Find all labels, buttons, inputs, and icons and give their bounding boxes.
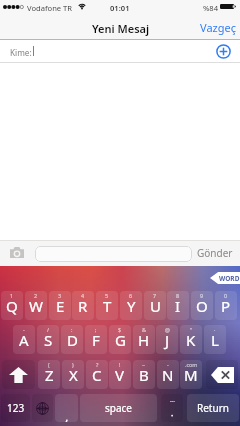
staticText: H <box>138 330 150 350</box>
staticText: J <box>165 330 170 350</box>
staticText: 1 <box>10 292 14 299</box>
button[interactable]: 0 <box>215 291 237 320</box>
staticText: 7 <box>153 292 157 299</box>
button[interactable]: @ <box>156 325 178 354</box>
button[interactable]: ( <box>38 360 60 389</box>
button[interactable]: 1 <box>1 291 23 320</box>
button[interactable]: ? <box>86 360 108 389</box>
button[interactable]: Camera <box>8 245 25 260</box>
staticText: • <box>171 412 174 420</box>
button[interactable]: 9 <box>191 291 213 320</box>
staticText: S <box>44 330 53 350</box>
staticText: W <box>29 296 43 316</box>
button[interactable]: 2 <box>25 291 47 320</box>
staticText: G <box>115 330 126 350</box>
staticText: Vodafone TR <box>27 3 73 13</box>
staticText: B <box>139 365 149 385</box>
button[interactable]: Add contact <box>213 41 234 62</box>
staticText: ••• <box>170 399 175 405</box>
button[interactable]: ••• <box>161 394 183 422</box>
staticText: @ <box>165 326 170 333</box>
staticText: - <box>23 326 25 333</box>
staticText: ? <box>96 361 99 368</box>
button[interactable]: 4 <box>72 291 94 320</box>
staticText: 6 <box>129 292 133 299</box>
button[interactable]: Vazgeç <box>196 17 240 38</box>
button[interactable]: " <box>180 325 202 354</box>
staticText: K <box>186 330 196 350</box>
staticText: A <box>19 330 29 350</box>
staticText: F <box>92 330 100 350</box>
staticText: %84 <box>203 3 218 13</box>
button[interactable]: : <box>61 325 83 354</box>
button[interactable]: 7 <box>144 291 166 320</box>
staticText: Y <box>127 296 136 316</box>
staticText: P <box>221 296 231 316</box>
button[interactable]: 123 <box>1 394 30 422</box>
staticText: M <box>184 365 198 385</box>
staticText: U <box>150 296 161 316</box>
staticText: 4 <box>81 292 85 299</box>
staticText: ) <box>72 361 74 368</box>
staticText: $ <box>118 326 122 333</box>
staticText: O <box>196 296 208 316</box>
button[interactable] <box>35 246 192 262</box>
staticText: space <box>105 401 132 415</box>
staticText: Z <box>45 365 54 385</box>
staticText: / <box>47 326 50 333</box>
button[interactable]: 3 <box>49 291 71 320</box>
button[interactable]: space <box>80 394 157 422</box>
staticText: ( <box>48 361 50 368</box>
staticText: R <box>78 296 88 316</box>
staticText: , <box>65 407 69 422</box>
staticText: 2 <box>34 292 38 299</box>
staticText: Return <box>197 401 229 415</box>
button[interactable]: / <box>37 325 59 354</box>
staticText: & <box>142 326 146 333</box>
button[interactable]: Gönder <box>195 244 235 262</box>
button[interactable]: Return <box>187 394 239 422</box>
staticText: 123 <box>7 401 25 415</box>
button[interactable]: Backspace <box>206 360 238 389</box>
button[interactable]: & <box>133 325 155 354</box>
button[interactable]: - <box>157 360 179 389</box>
staticText: 01:01 <box>110 3 130 13</box>
button[interactable]: 5 <box>96 291 118 320</box>
staticText: · <box>214 326 216 333</box>
staticText: WORD <box>219 274 240 283</box>
staticText: T <box>103 296 112 316</box>
button[interactable]: - <box>13 325 35 354</box>
staticText: 8 <box>176 292 180 299</box>
button[interactable]: ! <box>109 360 131 389</box>
staticText: X <box>69 365 78 385</box>
button[interactable]: 8 <box>167 291 189 320</box>
staticText: ! <box>119 361 121 368</box>
staticText: D <box>67 330 78 350</box>
button[interactable]: · <box>204 325 226 354</box>
button[interactable]: , <box>55 394 78 422</box>
staticText: L <box>211 330 219 350</box>
staticText: 5 <box>105 292 109 299</box>
button[interactable]: ~ <box>133 360 155 389</box>
staticText: ; <box>95 326 97 333</box>
staticText: Gönder <box>197 246 233 260</box>
staticText: N <box>162 365 174 385</box>
button[interactable]: ; <box>85 325 107 354</box>
staticText: ~ <box>142 361 146 368</box>
button[interactable]: .com <box>180 360 202 389</box>
staticText: " <box>190 326 193 333</box>
staticText: .com <box>185 361 198 368</box>
button[interactable]: ) <box>62 360 84 389</box>
staticText: 3 <box>58 292 62 299</box>
staticText: C <box>92 365 102 385</box>
staticText: Vazgeç <box>200 20 236 35</box>
button[interactable]: $ <box>109 325 131 354</box>
button[interactable]: Change keyboard <box>32 394 53 422</box>
staticText: 0 <box>224 292 228 299</box>
staticText: - <box>167 361 169 368</box>
button[interactable]: Shift <box>2 360 35 389</box>
button[interactable]: 6 <box>120 291 142 320</box>
staticText: Kime: <box>10 47 32 58</box>
staticText: V <box>115 365 125 385</box>
staticText: Yeni Mesaj <box>92 21 150 36</box>
